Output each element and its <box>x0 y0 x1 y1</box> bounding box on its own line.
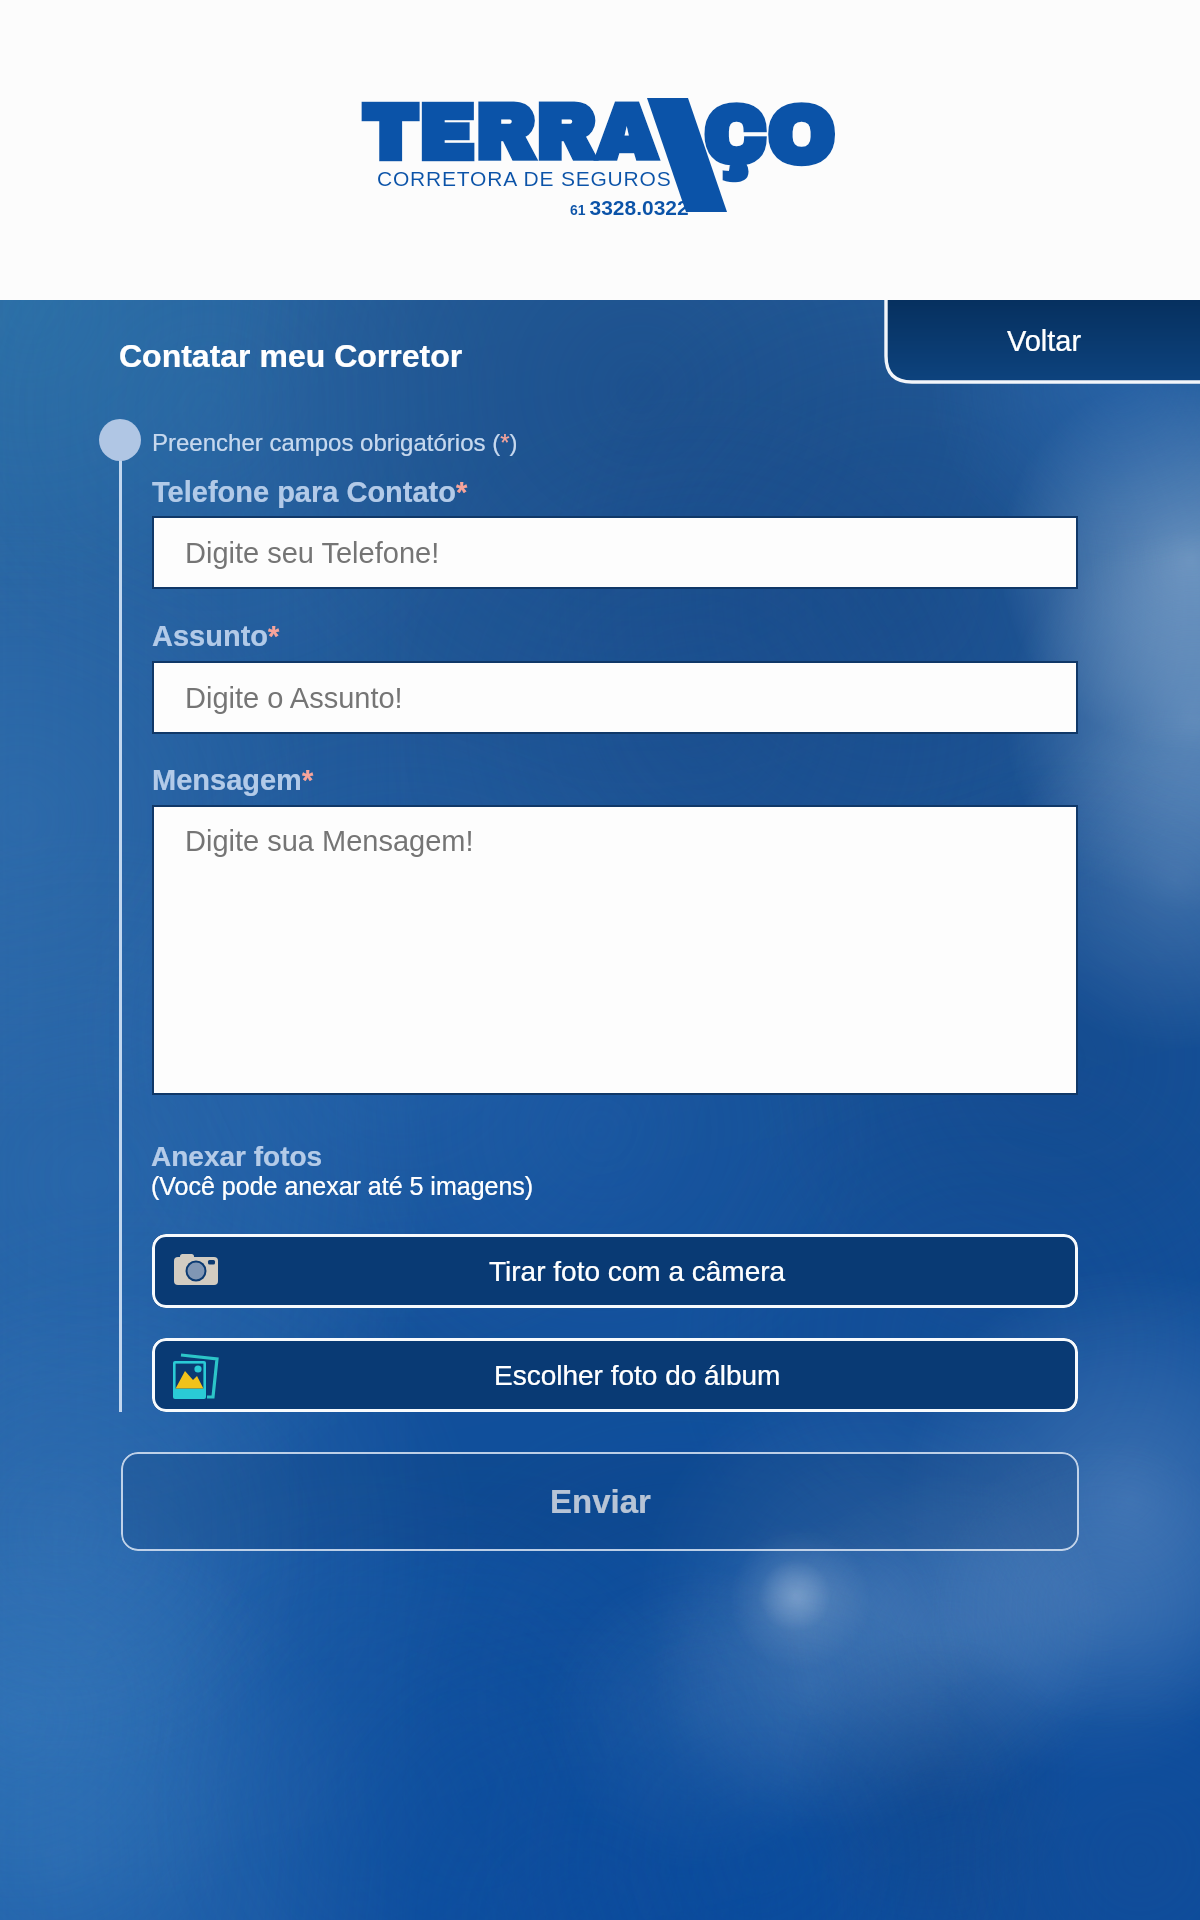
other: Take photo with camera <box>152 1234 1078 1308</box>
staticText: Contatar meu Corretor <box>119 338 463 374</box>
staticText: Digite sua Mensagem! <box>185 825 474 857</box>
staticText: (Você pode anexar até 5 imagens) <box>151 1172 534 1200</box>
staticText: Escolher foto do álbum <box>494 1360 781 1391</box>
staticText: Enviar <box>550 1483 651 1520</box>
staticText: TERRA <box>361 92 656 177</box>
staticText: ÇO <box>702 92 835 181</box>
button[interactable]: Tirar foto com a câmera <box>152 1234 1078 1308</box>
staticText: Anexar fotos <box>151 1141 323 1172</box>
button[interactable]: Digite o Assunto! <box>154 663 1076 732</box>
button[interactable]: Voltar <box>886 300 1200 382</box>
button[interactable]: Digite sua Mensagem! <box>154 807 1076 1093</box>
staticText: Preencher campos obrigatórios (*) <box>152 429 518 456</box>
staticText: Assunto* <box>152 620 280 652</box>
staticText: Telefone para Contato* <box>152 476 468 508</box>
staticText: Tirar foto com a câmera <box>489 1256 786 1287</box>
staticText: 61 3328.0322 <box>570 196 689 219</box>
staticText: Digite seu Telefone! <box>185 537 440 569</box>
staticText: Voltar <box>1007 325 1082 357</box>
button[interactable]: Escolher foto do álbum <box>152 1338 1078 1412</box>
button[interactable]: Enviar <box>121 1452 1079 1551</box>
staticText: CORRETORA DE SEGUROS <box>377 167 672 190</box>
button[interactable]: Digite seu Telefone! <box>154 518 1076 587</box>
staticText: Digite o Assunto! <box>185 682 403 714</box>
other: Choose photo from album <box>152 1338 1078 1412</box>
staticText: Mensagem* <box>152 764 314 796</box>
